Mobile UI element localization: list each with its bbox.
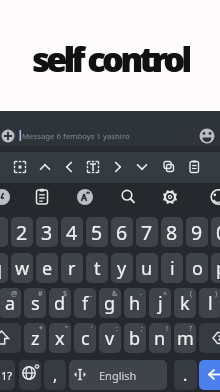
button[interactable] (199, 360, 220, 390)
staticText: , (53, 364, 58, 386)
button[interactable]: k (174, 288, 196, 318)
staticText: @ (11, 289, 18, 299)
button[interactable]: a (0, 288, 21, 318)
button[interactable]: i (161, 253, 183, 283)
staticText: 6 (116, 219, 128, 246)
button[interactable]: s (24, 288, 46, 318)
button[interactable]: m (174, 323, 196, 353)
staticText: self control (32, 37, 189, 81)
button[interactable] (205, 184, 220, 211)
staticText: " (65, 324, 68, 334)
button[interactable] (58, 152, 80, 183)
button[interactable]: b (124, 323, 146, 353)
button[interactable]: o (186, 253, 208, 283)
staticText: k (180, 291, 190, 316)
button[interactable]: 3 (36, 217, 58, 247)
button[interactable] (156, 152, 178, 183)
button[interactable]: g (99, 288, 121, 318)
staticText: English (99, 368, 137, 383)
button[interactable]: p (211, 253, 220, 283)
button[interactable]: h (124, 288, 146, 318)
staticText: . (183, 364, 188, 386)
button[interactable]: j (149, 288, 171, 318)
button[interactable] (34, 152, 56, 183)
staticText: + (163, 289, 168, 299)
staticText: ) (215, 289, 218, 299)
button[interactable]: c (74, 323, 96, 353)
staticText: q (0, 256, 3, 281)
button[interactable]: z (24, 323, 46, 353)
button[interactable]: 1 (0, 217, 8, 247)
button[interactable]: n (149, 323, 171, 353)
button[interactable] (197, 124, 217, 146)
staticText: h (129, 291, 141, 316)
button[interactable]: t (86, 253, 108, 283)
staticText: ' (91, 324, 93, 334)
button[interactable] (199, 323, 220, 353)
button[interactable] (183, 152, 205, 183)
staticText: Message 6 femboys 1 yashiro (22, 131, 130, 142)
staticText: v (105, 326, 115, 351)
button[interactable]: w (11, 253, 33, 283)
staticText: m (177, 326, 194, 351)
button[interactable]: 5 (86, 217, 108, 247)
staticText: 7 (141, 219, 153, 246)
button[interactable] (0, 124, 17, 146)
button[interactable] (131, 152, 153, 183)
button[interactable]: 8 (161, 217, 183, 247)
button[interactable]: x (49, 323, 71, 353)
button[interactable]: d (49, 288, 71, 318)
button[interactable] (160, 184, 180, 211)
staticText: ! (166, 324, 168, 334)
staticText: : (116, 324, 118, 334)
button[interactable] (118, 184, 138, 211)
button[interactable] (0, 111, 220, 146)
button[interactable]: 0 (211, 217, 220, 247)
button[interactable] (69, 360, 167, 390)
staticText: e (42, 256, 53, 281)
button[interactable]: . (174, 360, 197, 390)
button[interactable] (75, 184, 95, 211)
staticText: 0 (216, 219, 220, 246)
button[interactable] (0, 184, 12, 211)
button[interactable] (0, 323, 21, 353)
button[interactable]: u (136, 253, 158, 283)
staticText: c (81, 326, 90, 351)
button[interactable] (107, 152, 129, 183)
button[interactable]: y (111, 253, 133, 283)
staticText: l (208, 291, 213, 316)
staticText: 4 (66, 219, 78, 246)
staticText: t (94, 256, 101, 281)
button[interactable] (82, 152, 104, 183)
staticText: ? (189, 324, 193, 334)
button[interactable]: f (74, 288, 96, 318)
button[interactable]: r (61, 253, 83, 283)
button[interactable]: q (0, 253, 8, 283)
button[interactable] (32, 184, 52, 211)
button[interactable]: 9 (186, 217, 208, 247)
button[interactable]: 2 (11, 217, 33, 247)
button[interactable]: 6 (111, 217, 133, 247)
button[interactable]: 4 (61, 217, 83, 247)
button[interactable]: v (99, 323, 121, 353)
staticText: 8 (166, 219, 178, 246)
staticText: j (158, 291, 163, 316)
button[interactable] (9, 152, 31, 183)
staticText: s (31, 291, 40, 316)
button[interactable] (19, 360, 41, 390)
button[interactable]: 7 (136, 217, 158, 247)
staticText: 5 (91, 219, 103, 246)
staticText: d (54, 291, 66, 316)
staticText: x (55, 326, 65, 351)
staticText: f (82, 291, 89, 316)
staticText: ; (141, 324, 143, 334)
button[interactable] (0, 360, 15, 390)
button[interactable]: e (36, 253, 58, 283)
staticText: & (112, 289, 118, 299)
staticText: w (15, 256, 30, 281)
staticText: g (104, 291, 116, 316)
button[interactable]: l (199, 288, 220, 318)
staticText: u (141, 256, 153, 281)
button[interactable]: , (44, 360, 66, 390)
